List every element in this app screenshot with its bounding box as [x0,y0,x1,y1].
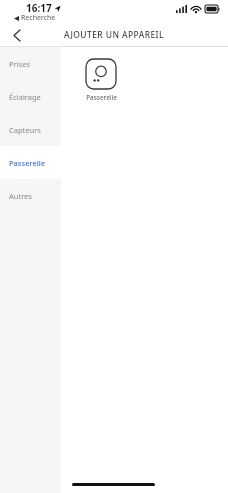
staticText: Éclairage [9,92,41,102]
button[interactable]: Passerelle [74,58,128,102]
staticText: Recherche [21,13,56,23]
staticText: AJOUTER UN APPAREIL [64,29,164,41]
button[interactable]: Back [4,24,30,46]
staticText: Passerelle [9,158,46,168]
staticText: Prises [9,59,30,69]
staticText: Capteurs [9,125,41,135]
button[interactable]: Prises [0,47,61,80]
button[interactable]: Autres [0,179,61,212]
staticText: Passerelle [86,93,117,102]
staticText: 16:17 [26,1,52,15]
button[interactable]: Éclairage [0,80,61,113]
staticText: Autres [9,191,32,201]
button[interactable]: Capteurs [0,113,61,146]
button[interactable]: Passerelle [0,146,61,179]
